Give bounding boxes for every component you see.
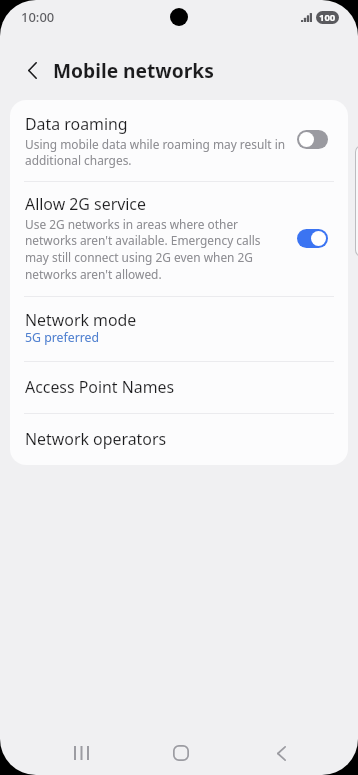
button[interactable]: Back — [257, 731, 305, 775]
staticText: Network operators — [25, 428, 167, 450]
button[interactable]: Network operators — [10, 414, 348, 465]
button[interactable]: Recent apps — [57, 731, 105, 775]
staticText: Mobile networks — [53, 57, 214, 83]
button[interactable]: Off — [297, 130, 328, 149]
button[interactable]: Network mode — [10, 297, 348, 361]
button[interactable]: Navigate up — [15, 53, 49, 87]
staticText: Access Point Names — [25, 376, 175, 398]
staticText: Data roaming — [25, 113, 128, 135]
staticText: Network mode — [25, 309, 137, 331]
button[interactable]: Data roaming — [10, 100, 348, 181]
staticText: Allow 2G service — [25, 193, 146, 215]
button[interactable]: Allow 2G service — [10, 182, 348, 296]
staticText: Use 2G networks in areas where other net… — [25, 216, 281, 283]
button[interactable]: On — [297, 229, 328, 248]
staticText: 10:00 — [21, 8, 55, 26]
staticText: 100 — [319, 11, 336, 24]
staticText: Using mobile data while roaming may resu… — [25, 136, 291, 169]
button[interactable]: Access Point Names — [10, 362, 348, 413]
staticText: 5G preferred — [25, 329, 100, 346]
button[interactable]: Home — [157, 731, 205, 775]
